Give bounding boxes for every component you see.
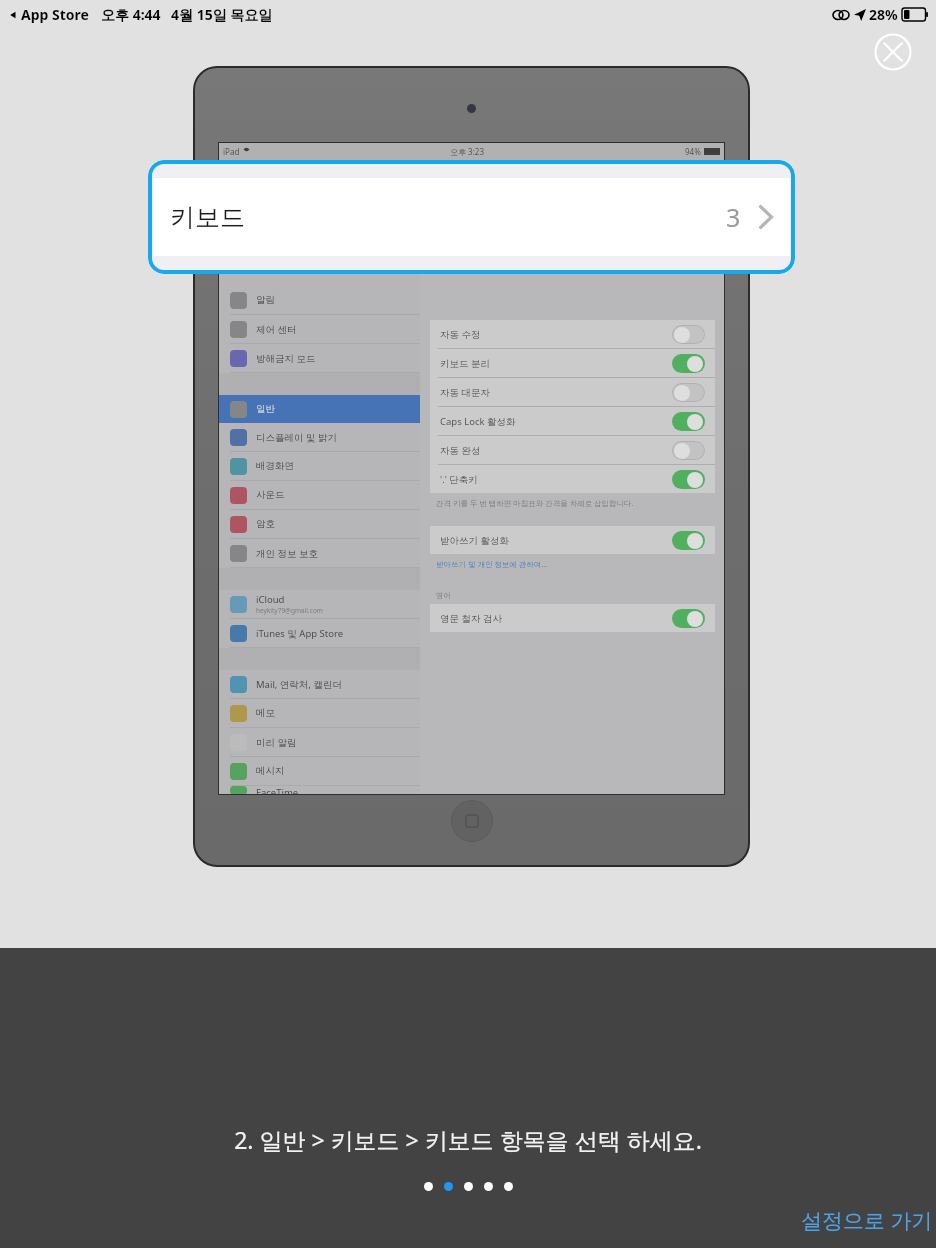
button[interactable]: 디스플레이 및 밝기 [218,423,420,451]
staticText: iCloud [256,593,285,606]
staticText: 자동 완성 [440,444,481,457]
staticText: 설정으로 가기 [801,1206,933,1235]
button[interactable]: 받아쓰기 활성화 [430,526,715,554]
staticText: FaceTime [256,786,299,795]
staticText: 알림 [256,294,275,306]
staticText: 사운드 [256,489,285,501]
staticText: 미리 알림 [256,736,297,749]
staticText: 영문 철자 검사 [440,612,502,625]
button[interactable]: 자동 대문자 [430,378,715,406]
staticText: heykity79@gmail.com [256,606,323,615]
button[interactable]: 키보드 [148,160,795,274]
staticText: '.' 단축키 [440,473,478,486]
staticText: 오후 3:23 [450,146,484,157]
staticText: 영어 [436,591,451,600]
button[interactable]: Mail, 연락처, 캘린더 [218,670,420,698]
button[interactable]: 닫기 [874,33,912,71]
button[interactable]: iTunes 및 App Store [218,619,420,647]
staticText: 4월 15일 목요일 [171,5,273,24]
staticText: 받아쓰기 활성화 [440,534,509,547]
button[interactable]: iCloud [218,590,420,618]
staticText: 오후 4:44 [101,5,161,24]
staticText: 자동 수정 [440,328,481,341]
button[interactable]: 영문 철자 검사 [430,604,715,632]
staticText: 메모 [256,707,275,719]
staticText: 제어 센터 [256,323,297,336]
staticText: Caps Lock 활성화 [440,415,516,428]
staticText: 키보드 [170,202,245,233]
staticText: 방해금지 모드 [256,352,316,365]
button[interactable]: 설정으로 가기 [795,1200,936,1241]
staticText: 3 [726,200,741,234]
button[interactable]: '.' 단축키 [430,465,715,493]
staticText: 키보드 분리 [440,357,490,370]
staticText: iTunes 및 App Store [256,627,344,640]
button[interactable]: 미리 알림 [218,728,420,756]
staticText: 일반 [256,403,275,415]
staticText: 개인 정보 보호 [256,547,318,560]
staticText: 배경화면 [256,460,294,472]
staticText: 메시지 [256,765,285,777]
staticText: App Store [21,5,89,24]
button[interactable]: 메시지 [218,757,420,785]
button[interactable]: 알림 [218,286,420,314]
button[interactable]: 자동 완성 [430,436,715,464]
button[interactable]: 개인 정보 보호 [218,539,420,567]
button[interactable]: FaceTime [218,786,420,795]
staticText: 간격 키를 두 번 탭하면 마침표와 간격을 차례로 삽입합니다. [436,498,634,508]
staticText: 받아쓰기 및 개인 정보에 관하여... [436,559,548,569]
staticText: 디스플레이 및 밝기 [256,431,337,444]
staticText: 암호 [256,518,275,530]
staticText: 94% [685,146,701,157]
button[interactable]: 사운드 [218,481,420,509]
button[interactable]: 방해금지 모드 [218,344,420,372]
staticText: Mail, 연락처, 캘린더 [256,678,342,691]
button[interactable]: Caps Lock 활성화 [430,407,715,435]
button[interactable]: 제어 센터 [218,315,420,343]
staticText: iPad [223,146,240,157]
button[interactable]: 키보드 분리 [430,349,715,377]
staticText: 자동 대문자 [440,386,490,399]
staticText: 28% [869,5,898,24]
button[interactable]: 자동 수정 [430,320,715,348]
button[interactable]: 배경화면 [218,452,420,480]
staticText: 2. 일반 > 키보드 > 키보드 항목을 선택 하세요. [234,1124,702,1155]
button[interactable]: 암호 [218,510,420,538]
button[interactable]: 일반 [218,395,420,423]
button[interactable]: 메모 [218,699,420,727]
